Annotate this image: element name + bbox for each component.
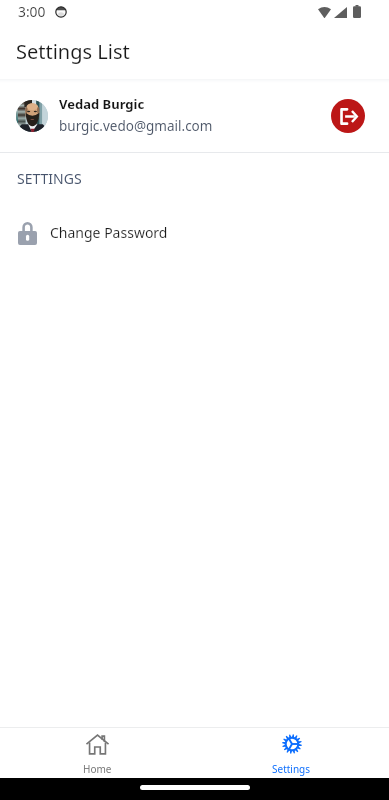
staticText: Home [83,762,112,776]
staticText: Change Password [50,223,168,242]
staticText: Settings [272,762,311,776]
staticText: Vedad Burgic [59,95,145,113]
button[interactable]: Log out [331,99,365,133]
button[interactable]: Vedad Burgic [0,79,389,152]
staticText: burgic.vedo@gmail.com [59,117,213,135]
staticText: Settings List [16,38,130,65]
button[interactable]: Home [0,728,194,778]
staticText: SETTINGS [17,169,82,188]
button[interactable]: Change Password [0,209,389,261]
button[interactable]: Settings [194,728,389,778]
staticText: 3:00 [18,2,46,21]
